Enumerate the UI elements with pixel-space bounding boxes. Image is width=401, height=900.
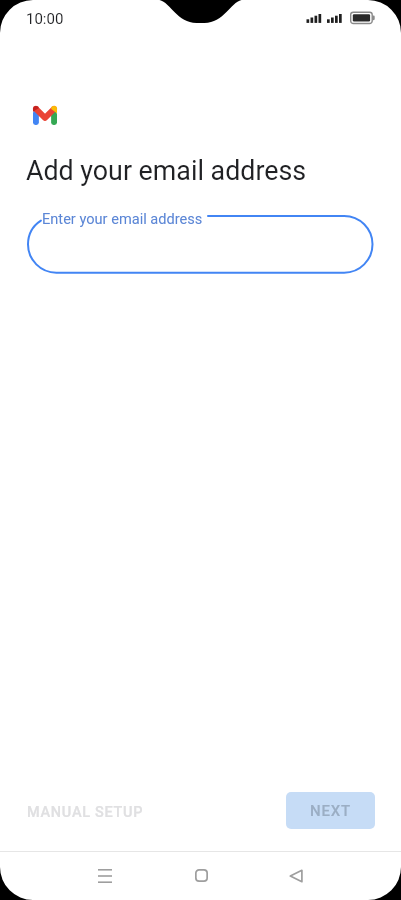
staticText: MANUAL SETUP [27, 804, 144, 821]
staticText: 10:00 [26, 10, 64, 28]
button[interactable]: Back [273, 853, 319, 898]
staticText: Add your email address [26, 155, 307, 186]
button[interactable]: NEXT [286, 792, 375, 829]
button[interactable]: Recent apps [82, 853, 128, 898]
button[interactable]: MANUAL SETUP [19, 797, 152, 828]
staticText: Enter your email address [42, 210, 203, 227]
staticText: NEXT [310, 802, 351, 820]
button[interactable]: Home [178, 853, 224, 898]
